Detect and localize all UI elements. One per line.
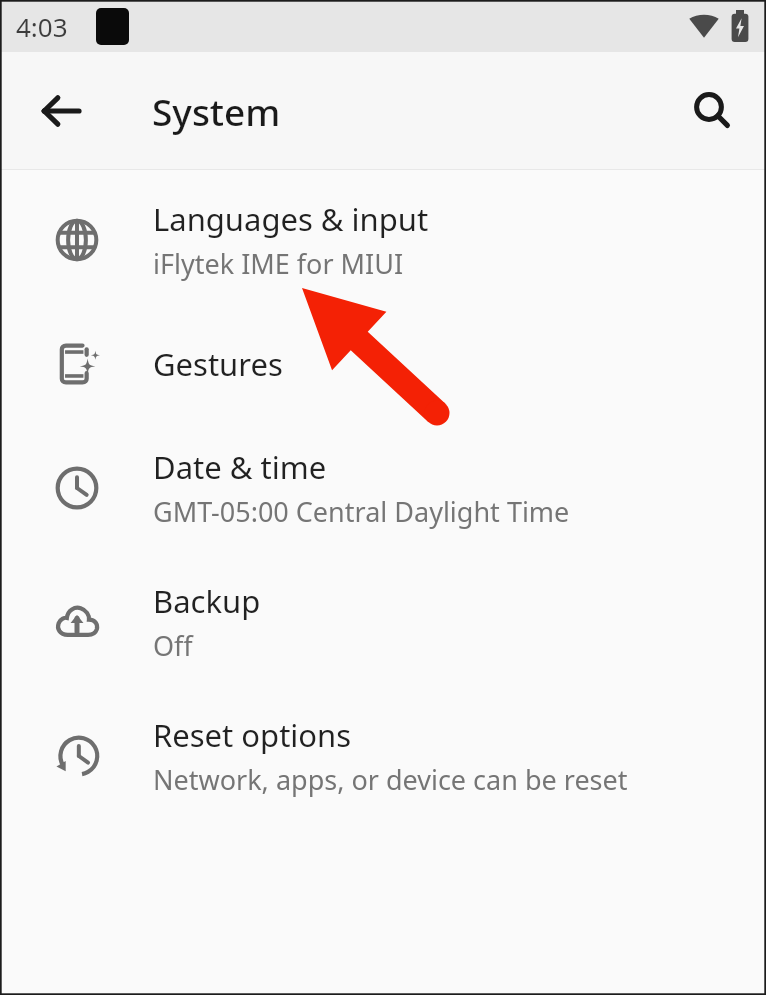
staticText: 4:03 [16,9,68,44]
staticText: Reset options [153,714,352,756]
staticText: Network, apps, or device can be reset [153,761,628,798]
staticText: Backup [153,580,261,622]
button[interactable]: Gestures [0,307,766,421]
staticText: iFlytek IME for MIUI [153,245,404,282]
button[interactable]: Backup [0,555,766,689]
button[interactable]: Date & time [0,421,766,555]
staticText: System [152,86,281,136]
button[interactable]: Reset options [0,689,766,823]
button[interactable]: Search [680,78,746,144]
button[interactable]: Languages & input [0,173,766,307]
button[interactable]: Back [30,80,92,142]
staticText: Languages & input [153,198,429,240]
staticText: Date & time [153,446,327,488]
staticText: Off [153,627,193,664]
staticText: GMT-05:00 Central Daylight Time [153,493,570,530]
staticText: Gestures [153,343,283,385]
